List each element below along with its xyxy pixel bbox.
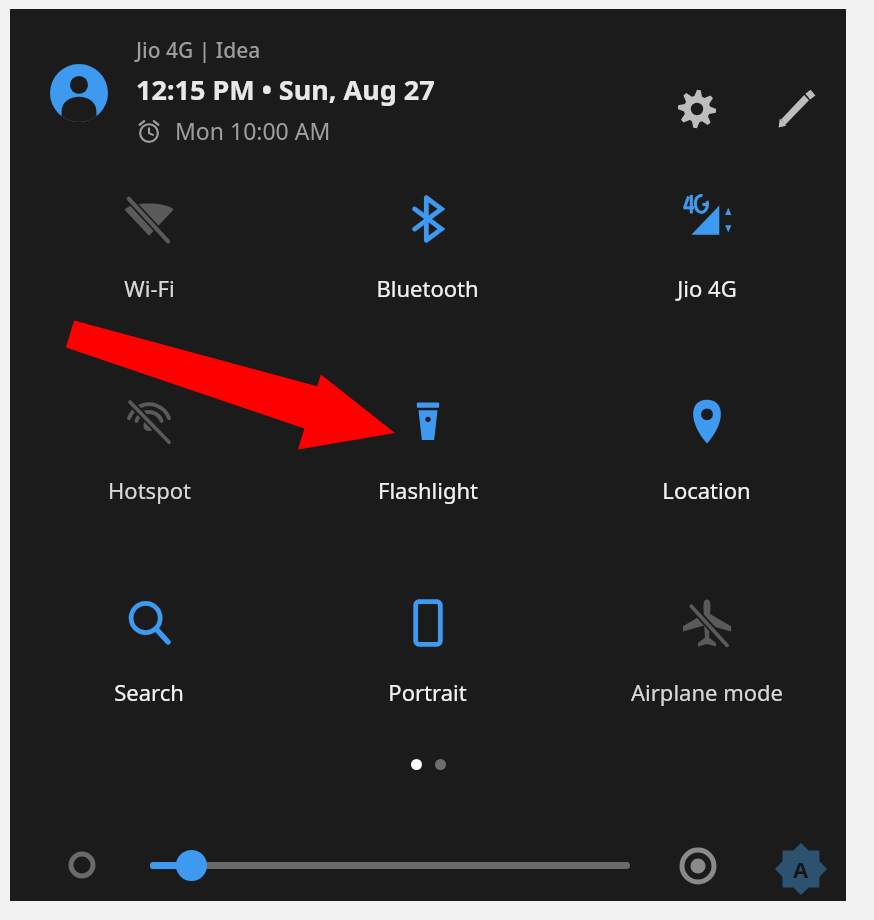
staticText: A — [793, 854, 809, 884]
button[interactable]: Edit — [765, 77, 829, 141]
button[interactable]: Brightness slider — [176, 850, 207, 881]
button[interactable]: Auto brightness — [775, 843, 827, 895]
button[interactable]: Airplane mode — [567, 573, 846, 775]
button[interactable]: Max brightness — [680, 848, 716, 884]
button[interactable]: Location — [567, 371, 846, 573]
staticText: Portrait — [388, 677, 467, 707]
button[interactable]: Flashlight — [288, 371, 567, 573]
staticText: 12:15 PM • Sun, Aug 27 — [136, 71, 435, 108]
button[interactable]: Hotspot — [10, 371, 288, 573]
button[interactable]: Portrait — [288, 573, 567, 775]
staticText: Wi-Fi — [124, 273, 175, 303]
staticText: Jio 4G — [677, 273, 737, 303]
button[interactable]: User profile — [50, 64, 108, 122]
staticText: Search — [114, 677, 184, 707]
staticText: Jio 4G | Idea — [136, 36, 261, 65]
button[interactable]: Search — [10, 573, 288, 775]
button[interactable]: Settings — [665, 77, 729, 141]
button[interactable]: Wi-Fi — [10, 169, 288, 371]
button[interactable]: Bluetooth — [288, 169, 567, 371]
staticText: Flashlight — [378, 475, 478, 505]
staticText: Bluetooth — [376, 273, 479, 303]
staticText: Location — [662, 475, 751, 505]
button[interactable]: Jio 4G — [567, 169, 846, 371]
staticText: Mon 10:00 AM — [175, 115, 331, 146]
staticText: Hotspot — [108, 475, 191, 505]
staticText: Airplane mode — [631, 677, 783, 707]
